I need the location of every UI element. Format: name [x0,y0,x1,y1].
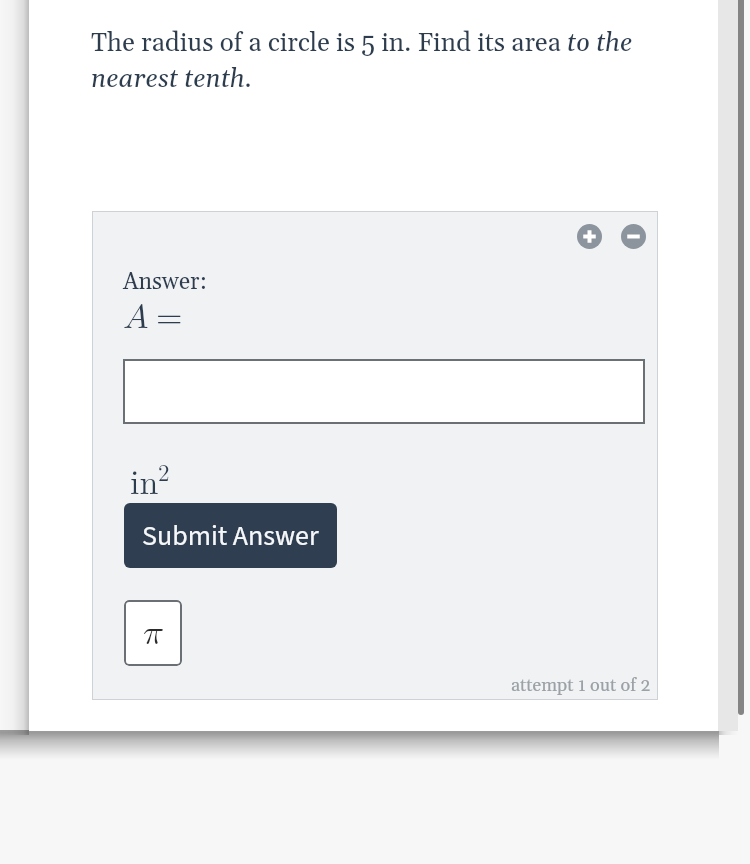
button[interactable]: 𝜋 [124,600,182,666]
staticText: attempt 1 out of 2 [511,674,651,697]
staticText: in [130,467,159,501]
staticText: Answer: [123,268,207,297]
staticText: 𝜋 [143,616,163,651]
staticText: The radius of a circle is 5 in. Find its… [91,27,683,96]
staticText: = [156,301,183,335]
button[interactable]: Zoom out [621,224,646,249]
staticText: Submit Answer [142,516,319,556]
staticText: 𝐴 [123,301,149,335]
staticText: 2 [158,462,170,485]
button[interactable]: Zoom in [577,224,602,249]
button[interactable]: Submit Answer [124,503,337,568]
button[interactable] [123,359,645,424]
